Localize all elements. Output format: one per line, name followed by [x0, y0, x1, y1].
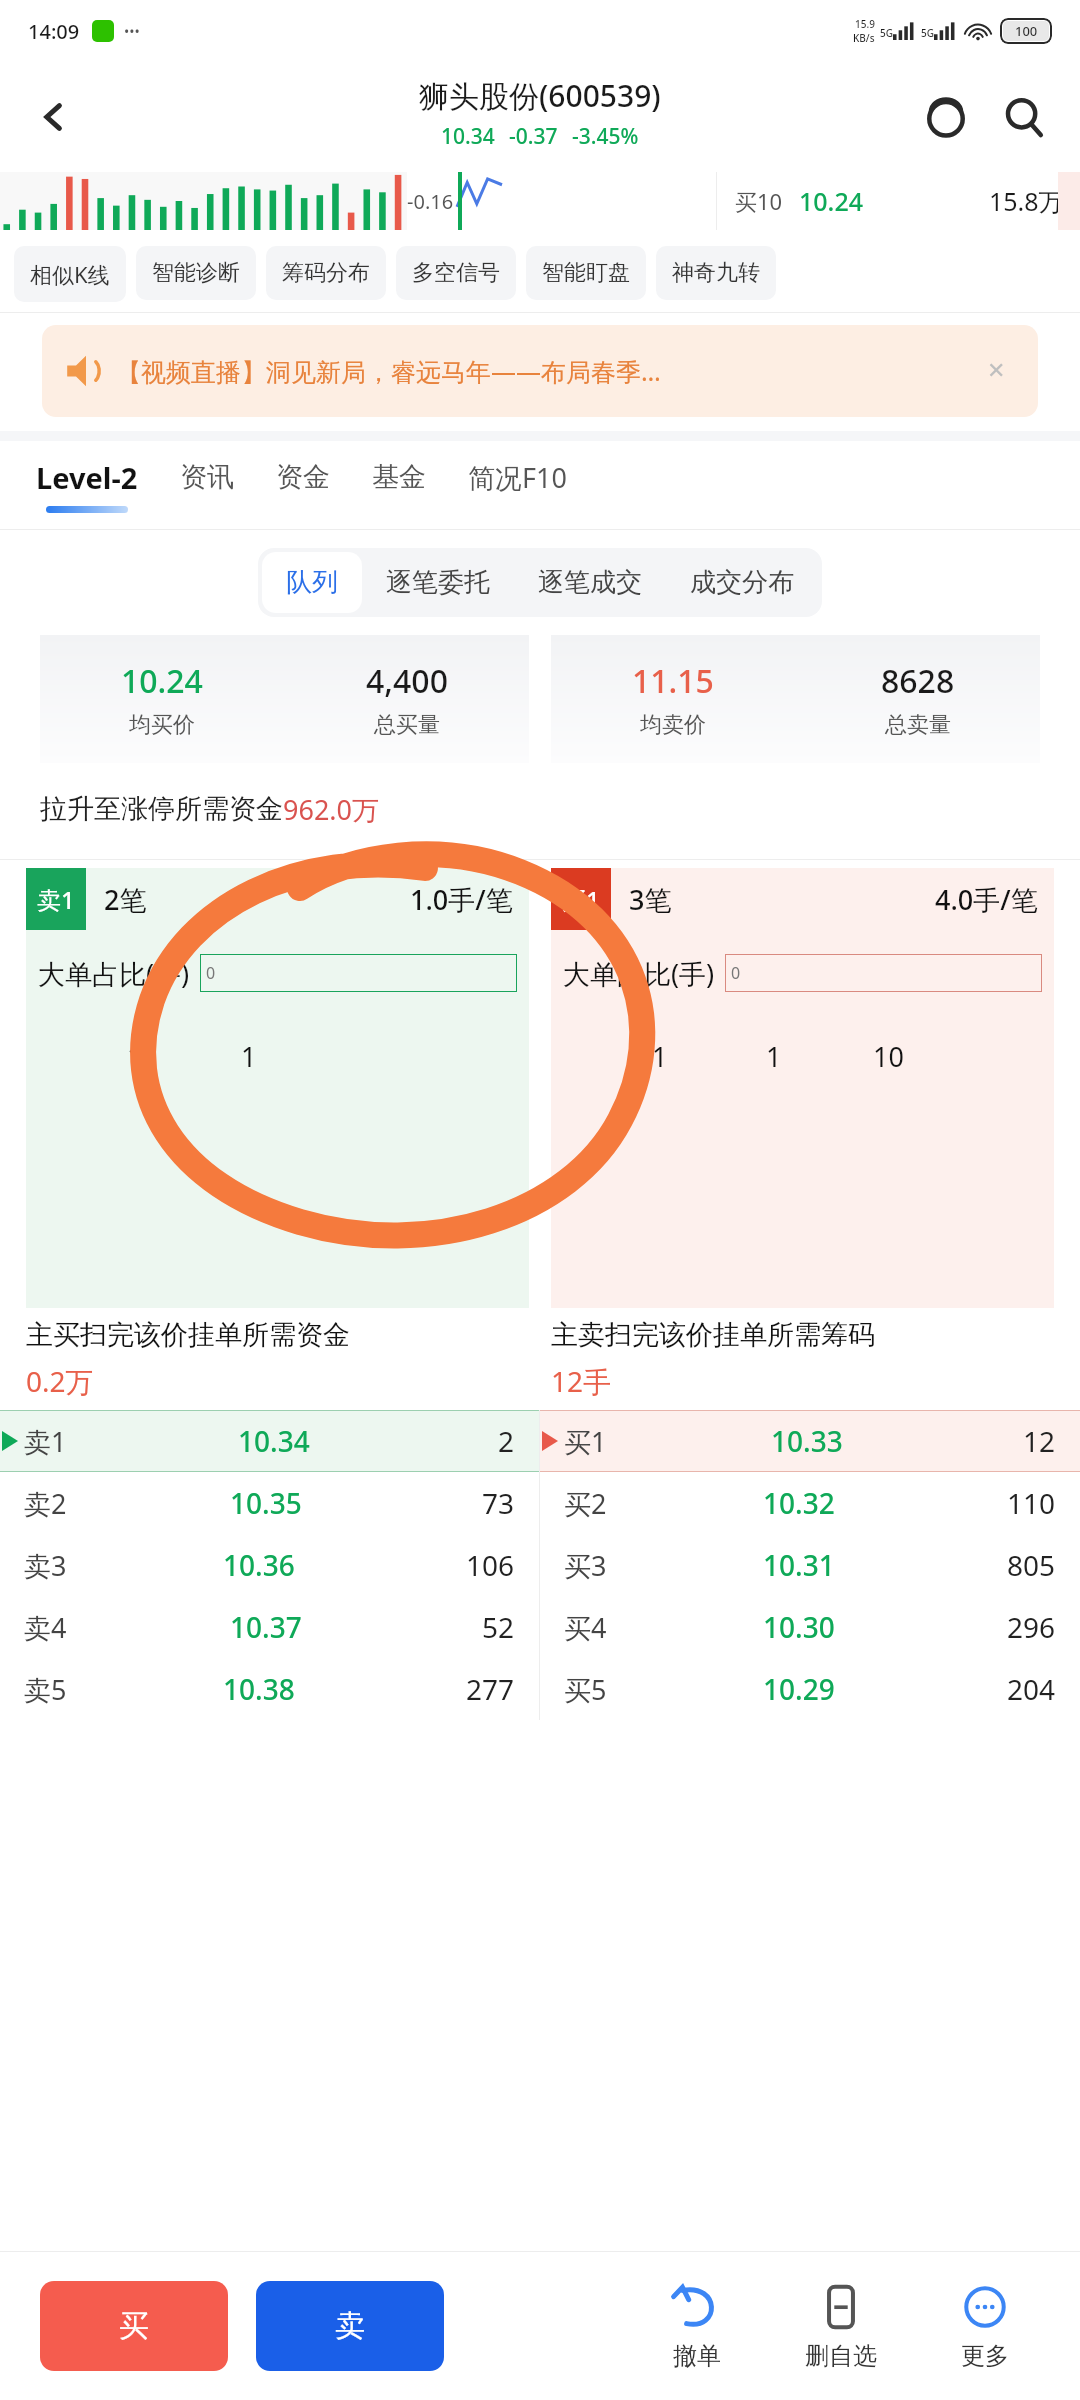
staticText: 0.2万 [26, 1362, 94, 1400]
button[interactable]: 简况F10 [468, 441, 609, 529]
button[interactable]: Back [18, 81, 90, 153]
staticText: 10.32 [763, 1484, 835, 1522]
staticText: 智能诊断 [152, 259, 240, 287]
staticText: 1 [127, 1038, 143, 1075]
staticText: 52 [482, 1608, 515, 1646]
button[interactable]: Profile [910, 81, 982, 153]
button[interactable]: 删自选 [782, 2281, 900, 2371]
staticText: 狮头股份(600539) [419, 75, 661, 116]
staticText: 买3 [564, 1547, 607, 1584]
button[interactable]: 卖 [256, 2281, 444, 2371]
staticText: 买1 [562, 883, 600, 916]
staticText: 大单占比(手) [38, 955, 190, 992]
staticText: 相似K线 [30, 259, 110, 289]
staticText: 10.29 [763, 1670, 835, 1708]
staticText: 筹码分布 [282, 259, 370, 287]
button[interactable]: 成交分布 [666, 552, 818, 613]
staticText: 204 [1007, 1670, 1056, 1708]
button[interactable]: 买4 [540, 1596, 1080, 1658]
staticText: 10.38 [223, 1670, 295, 1708]
staticText: KB/s [853, 31, 875, 45]
staticText: 805 [1007, 1546, 1056, 1584]
button[interactable]: 买5 [540, 1658, 1080, 1720]
staticText: 总买量 [374, 711, 440, 739]
staticText: 10.31 [763, 1546, 835, 1584]
staticText: 买 [119, 2307, 149, 2345]
staticText: 1 [766, 1038, 782, 1075]
staticText: 多空信号 [412, 259, 500, 287]
button[interactable]: 卖3 [0, 1534, 539, 1596]
staticText: 0 [206, 962, 216, 984]
staticText: 10.35 [230, 1484, 302, 1522]
staticText: 拉升至涨停所需资金 [40, 792, 283, 826]
button[interactable]: 买3 [540, 1534, 1080, 1596]
staticText: 卖5 [24, 1671, 67, 1708]
staticText: 10.30 [763, 1608, 835, 1646]
staticText: 卖1 [37, 883, 75, 916]
staticText: 买5 [564, 1671, 607, 1708]
staticText: 1.0手/笔 [410, 881, 513, 918]
button[interactable]: 买 [40, 2281, 228, 2371]
button[interactable]: Level-2 [36, 441, 180, 529]
staticText: 逐笔委托 [386, 566, 490, 599]
staticText: 14:09 [28, 18, 80, 45]
staticText: 资金 [276, 460, 330, 494]
button[interactable]: 买1 [540, 1410, 1080, 1472]
staticText: 10.24 [121, 659, 203, 703]
button[interactable]: Close banner [976, 351, 1016, 391]
button[interactable]: Search [988, 81, 1060, 153]
staticText: -3.45% [572, 122, 639, 151]
button[interactable]: 更多 [926, 2281, 1044, 2371]
staticText: 4,400 [366, 659, 448, 703]
button[interactable]: 智能诊断 [136, 246, 256, 300]
staticText: 更多 [961, 2341, 1009, 2371]
staticText: 12手 [551, 1362, 612, 1400]
button[interactable]: 智能盯盘 [526, 246, 646, 300]
button[interactable]: 多空信号 [396, 246, 516, 300]
staticText: ✕ [987, 358, 1006, 384]
staticText: 100 [1015, 22, 1038, 40]
button[interactable]: 筹码分布 [266, 246, 386, 300]
staticText: 5G [921, 26, 934, 40]
button[interactable]: 相似K线 [14, 246, 126, 302]
staticText: 10.33 [771, 1422, 843, 1460]
staticText: 资讯 [180, 460, 234, 494]
staticText: 简况F10 [468, 459, 567, 496]
button[interactable]: 撤单 [638, 2281, 756, 2371]
staticText: 主买扫完该价挂单所需资金 [26, 1318, 350, 1352]
button[interactable]: 基金 [372, 441, 468, 529]
staticText: 1 [652, 1038, 668, 1075]
staticText: 10 [873, 1038, 904, 1075]
button[interactable]: 神奇九转 [656, 246, 776, 300]
staticText: 15.8万 [989, 184, 1064, 218]
button[interactable]: 逐笔成交 [514, 552, 666, 613]
button[interactable]: 卖5 [0, 1658, 539, 1720]
staticText: 73 [482, 1484, 515, 1522]
staticText: 2笔 [104, 881, 147, 918]
staticText: 总卖量 [885, 711, 951, 739]
button[interactable]: 队列 [262, 552, 362, 613]
staticText: -0.16 [407, 188, 454, 215]
staticText: 15.9 [855, 17, 875, 31]
button[interactable]: 资讯 [180, 441, 276, 529]
staticText: 5G [880, 26, 893, 40]
staticText: 买4 [564, 1609, 607, 1646]
button[interactable]: 卖2 [0, 1472, 539, 1534]
staticText: 成交分布 [690, 566, 794, 599]
staticText: 卖2 [24, 1485, 67, 1522]
staticText: 8628 [881, 659, 955, 703]
staticText: 卖1 [24, 1423, 67, 1460]
staticText: 110 [1007, 1484, 1056, 1522]
staticText: 逐笔成交 [538, 566, 642, 599]
button[interactable]: 逐笔委托 [362, 552, 514, 613]
button[interactable]: 卖1 [0, 1410, 539, 1472]
staticText: 10.36 [223, 1546, 295, 1584]
button[interactable]: 卖4 [0, 1596, 539, 1658]
button[interactable]: 资金 [276, 441, 372, 529]
staticText: 基金 [372, 460, 426, 494]
staticText: 10.37 [230, 1608, 302, 1646]
button[interactable]: 【视频直播】洞见新局，睿远马年——布局春季… [42, 325, 1038, 417]
staticText: 主卖扫完该价挂单所需筹码 [551, 1318, 875, 1352]
button[interactable]: 买2 [540, 1472, 1080, 1534]
staticText: 均买价 [129, 711, 195, 739]
